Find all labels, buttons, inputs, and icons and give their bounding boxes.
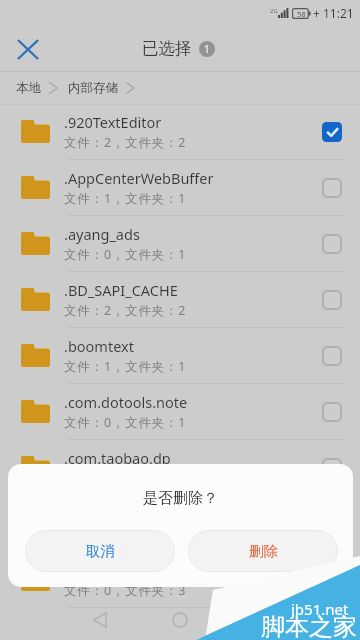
staticText: 取消: [86, 542, 115, 560]
staticText: 文件：0，文件夹：1: [64, 414, 187, 431]
staticText: .com.dotools.note: [64, 392, 188, 412]
button[interactable]: 主页: [165, 605, 195, 635]
staticText: 文件：0，文件夹：3: [64, 582, 187, 599]
staticText: .AppCenterWebBuffer: [64, 168, 214, 188]
button[interactable]: .com.dotools.note: [0, 384, 360, 440]
button[interactable]: 取消: [25, 530, 175, 572]
staticText: 58: [297, 9, 306, 19]
staticText: 文件：0，文件夹：3: [64, 526, 187, 543]
staticText: 文件：0，文件夹：1: [64, 246, 187, 263]
staticText: 文件：2，文件夹：2: [64, 134, 187, 151]
staticText: .DataStorage: [64, 504, 153, 524]
button[interactable]: .DataStorage: [0, 496, 360, 552]
staticText: 文件：1，文件夹：1: [64, 358, 187, 375]
button[interactable]: .920TextEditor: [0, 104, 360, 160]
button[interactable]: .AppCenterWebBuffer: [0, 160, 360, 216]
staticText: 文件：2，文件夹：2: [64, 302, 187, 319]
button[interactable]: .ayang_ads: [0, 216, 360, 272]
staticText: 脚本之家: [261, 612, 357, 640]
button[interactable]: .BD_SAPI_CACHE: [0, 272, 360, 328]
button[interactable]: 选择: [317, 341, 347, 371]
staticText: 删除: [249, 542, 278, 560]
button[interactable]: 返回: [85, 605, 115, 635]
button[interactable]: 删除: [188, 530, 338, 572]
button[interactable]: 选择: [317, 285, 347, 315]
staticText: .dmtmp: [64, 560, 119, 580]
staticText: 已选择: [142, 38, 192, 59]
staticText: 文件：1，文件夹：1: [64, 190, 187, 207]
button[interactable]: 选择: [317, 565, 347, 595]
button[interactable]: .dmtmp: [0, 552, 360, 608]
staticText: + 11:21: [313, 5, 354, 21]
staticText: 1: [204, 42, 210, 56]
button[interactable]: 最近任务: [245, 605, 275, 635]
button[interactable]: 选择: [317, 453, 347, 483]
staticText: jb51.net: [291, 599, 349, 619]
staticText: 2G: [270, 7, 278, 15]
button[interactable]: 选择: [317, 229, 347, 259]
staticText: 是否删除？: [143, 489, 218, 508]
button[interactable]: .boomtext: [0, 328, 360, 384]
button[interactable]: 选择: [317, 509, 347, 539]
button[interactable]: 关闭: [10, 31, 46, 67]
button[interactable]: .com.taobao.dp: [0, 440, 360, 496]
button[interactable]: 选择: [317, 173, 347, 203]
button[interactable]: 选择: [317, 397, 347, 427]
button[interactable]: 内部存储: [68, 80, 118, 96]
staticText: .ayang_ads: [64, 224, 140, 244]
staticText: .BD_SAPI_CACHE: [64, 280, 178, 300]
staticText: .com.taobao.dp: [64, 448, 171, 468]
button[interactable]: 选择: [317, 117, 347, 147]
staticText: .920TextEditor: [64, 112, 162, 132]
button[interactable]: 本地: [16, 80, 41, 96]
staticText: .boomtext: [64, 336, 134, 356]
